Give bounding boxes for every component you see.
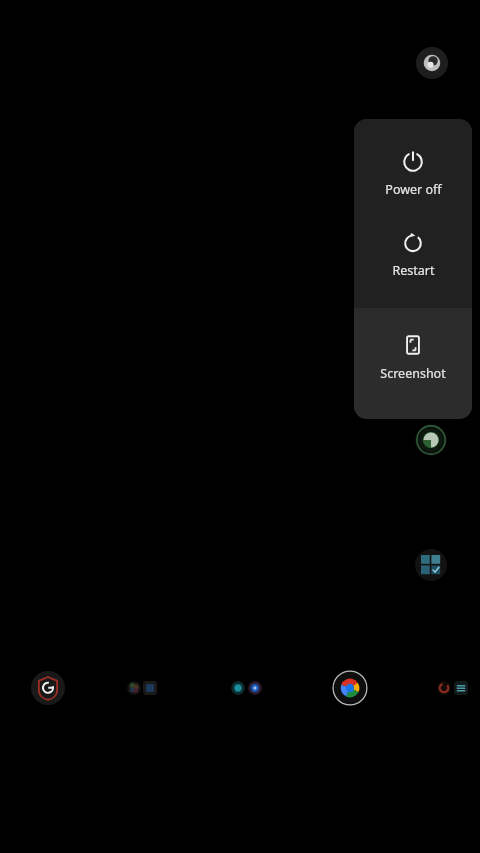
button[interactable]: Files [415, 549, 447, 581]
button[interactable]: Store [248, 681, 262, 695]
button[interactable]: Settings [454, 681, 468, 695]
button[interactable]: Gallery [143, 681, 157, 695]
staticText: Restart [392, 262, 435, 279]
button[interactable]: Restart [354, 226, 472, 308]
button[interactable]: Digital Wellbeing [415, 424, 447, 456]
button[interactable]: Screenshot [354, 308, 472, 410]
button[interactable]: Chrome [332, 670, 368, 706]
staticText: Power off [385, 181, 442, 198]
button[interactable]: Message [231, 681, 245, 695]
button[interactable]: Photos [127, 681, 141, 695]
button[interactable]: Google [31, 671, 65, 705]
button[interactable]: Power off [354, 119, 472, 226]
staticText: Screenshot [380, 365, 446, 382]
button[interactable]: Assistant [416, 47, 448, 79]
button[interactable]: Refresh [437, 681, 451, 695]
